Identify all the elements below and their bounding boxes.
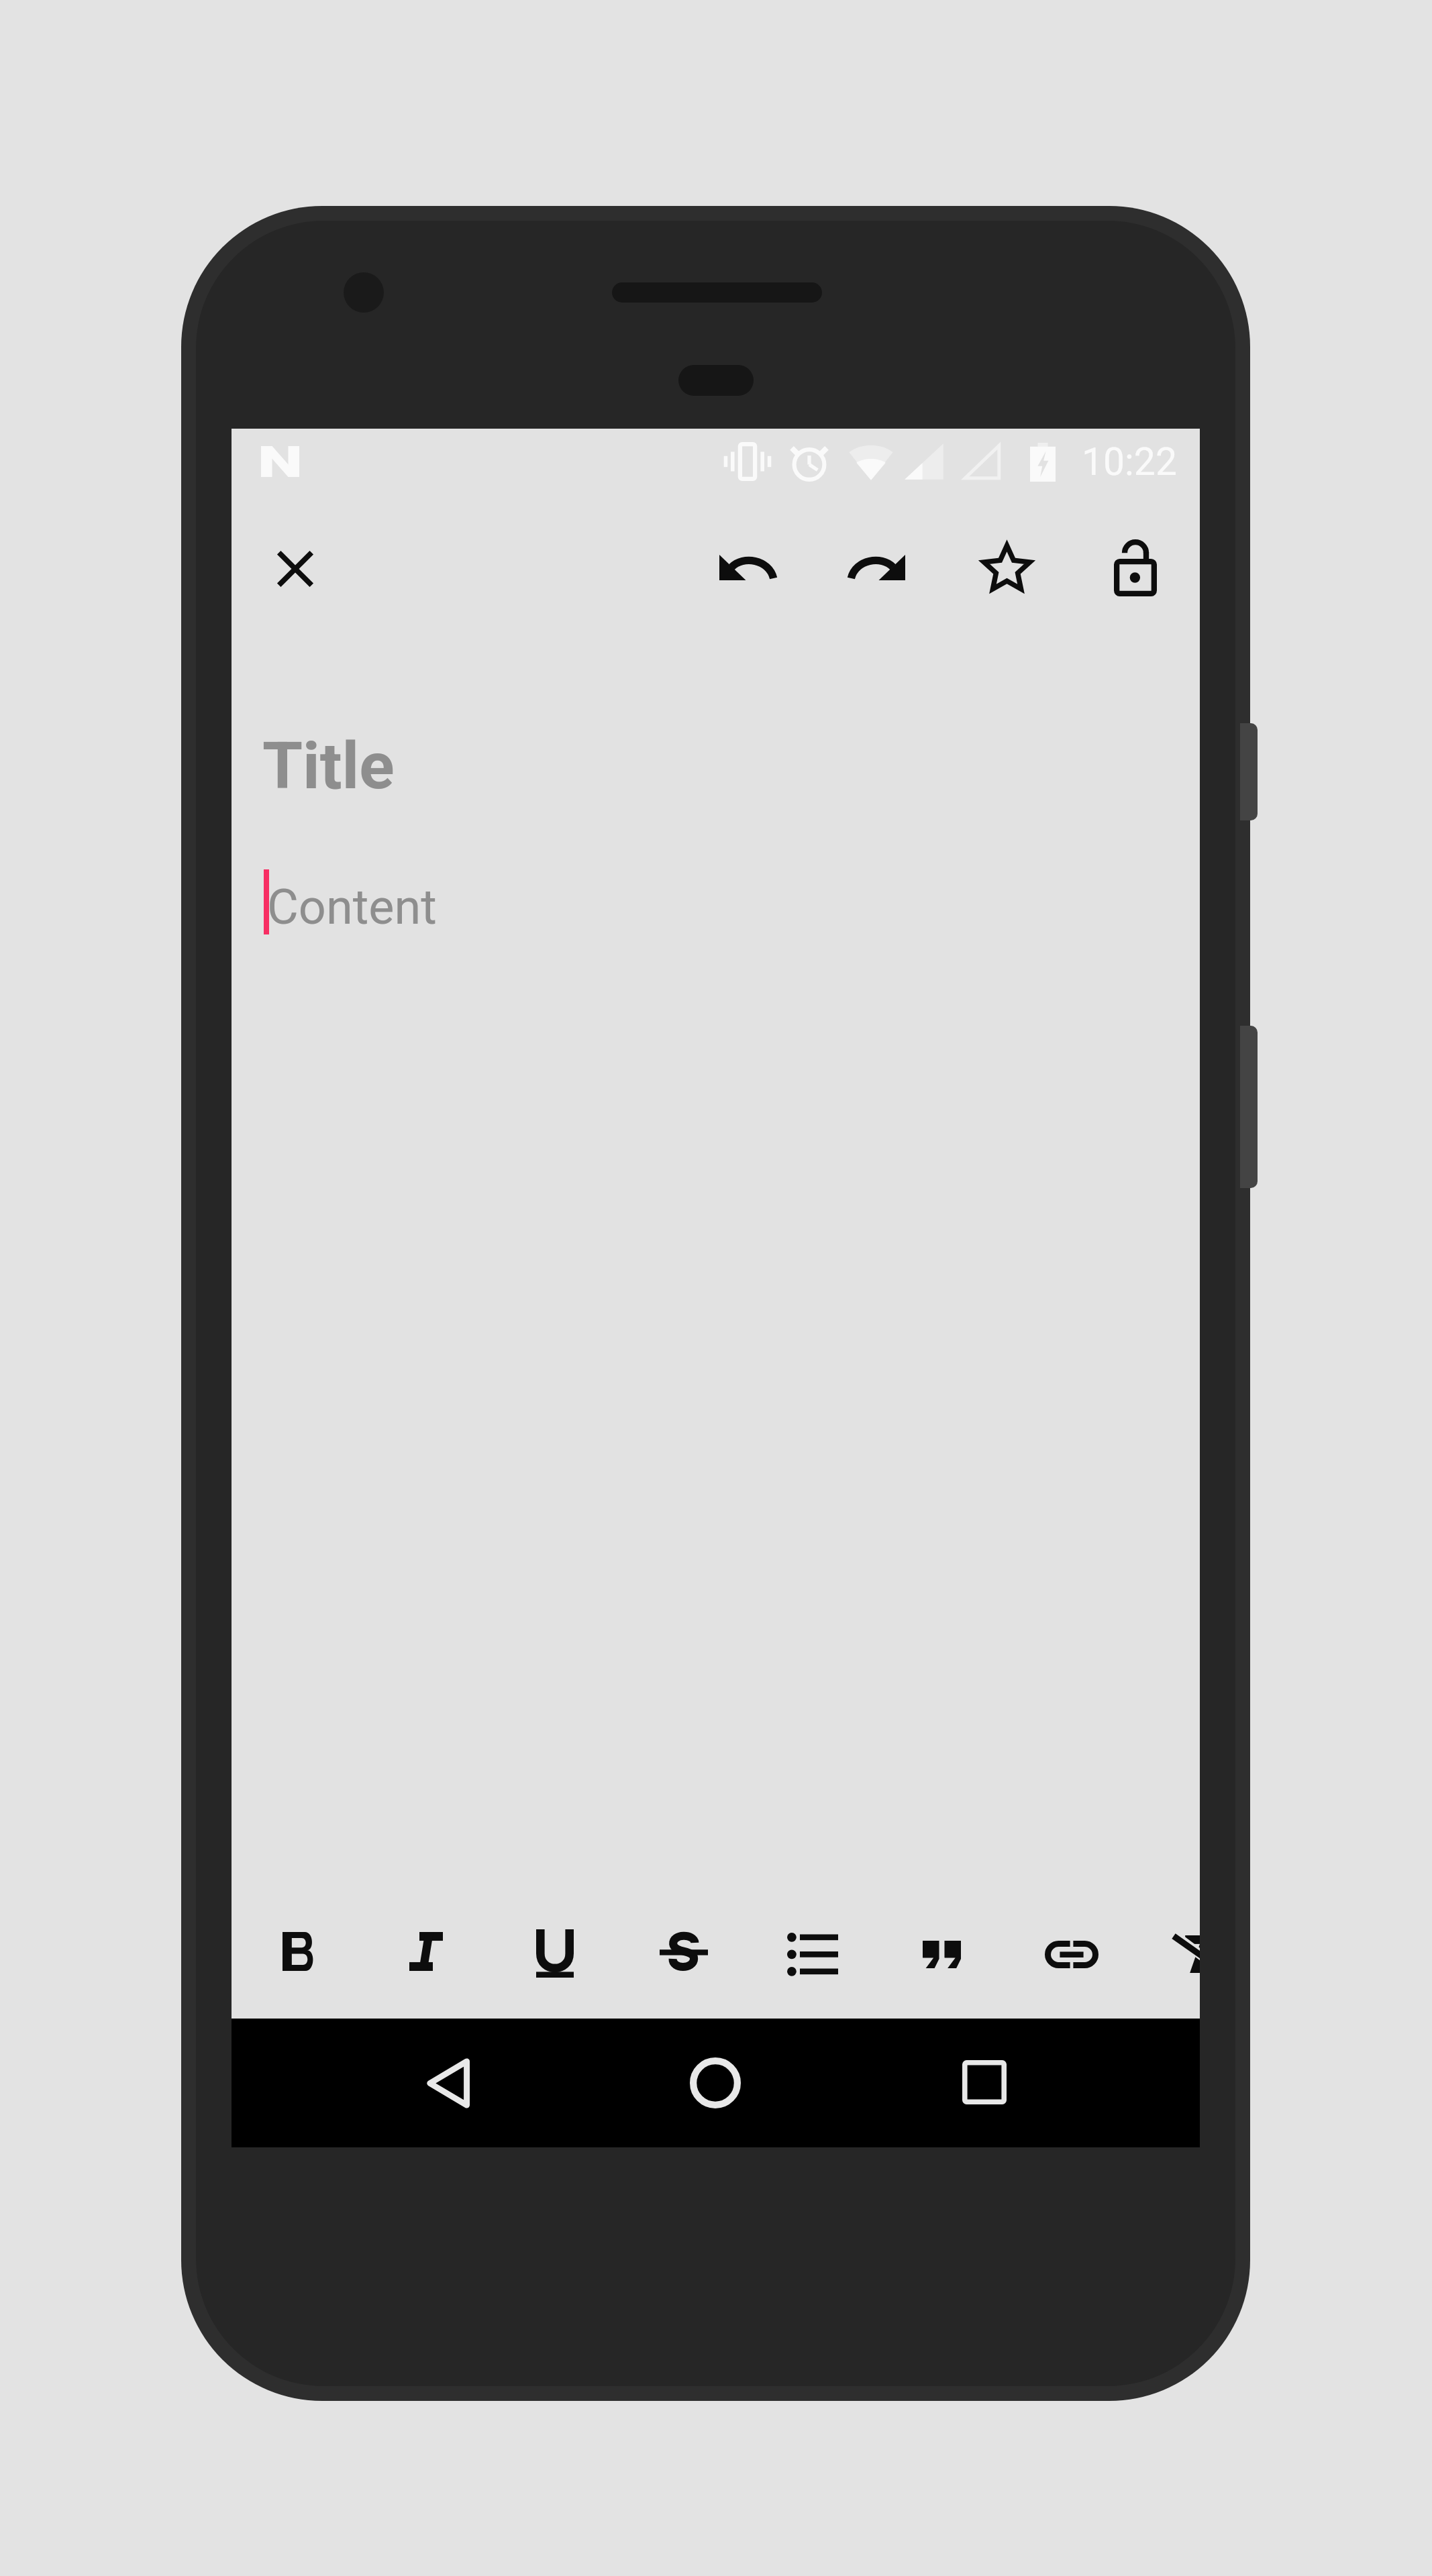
button[interactable]: Insert link	[1007, 1894, 1135, 2014]
button[interactable]: Underline	[491, 1894, 619, 2013]
button[interactable]: Bold	[234, 1892, 362, 2011]
button[interactable]: Home	[648, 2019, 782, 2147]
button[interactable]: Undo	[683, 519, 812, 616]
staticText: 10:22	[1082, 439, 1177, 484]
staticText: Content	[267, 879, 437, 935]
button[interactable]: Title	[232, 698, 1200, 812]
button[interactable]: Bulleted list	[748, 1892, 876, 2011]
button[interactable]: Strikethrough	[619, 1892, 748, 2011]
button[interactable]: Quote	[878, 1894, 1006, 2014]
button[interactable]: Favorite	[942, 519, 1071, 616]
staticText: Title	[262, 728, 395, 804]
button[interactable]: Clear formatting	[1135, 1894, 1200, 2014]
button[interactable]: Lock note	[1071, 519, 1200, 616]
button[interactable]: Close	[247, 521, 344, 617]
button[interactable]: Content	[232, 839, 1200, 1885]
button[interactable]: Recent apps	[917, 2018, 1052, 2147]
button[interactable]: Redo	[813, 519, 941, 616]
button[interactable]: Italic	[362, 1892, 490, 2011]
button[interactable]: Back	[380, 2019, 515, 2147]
